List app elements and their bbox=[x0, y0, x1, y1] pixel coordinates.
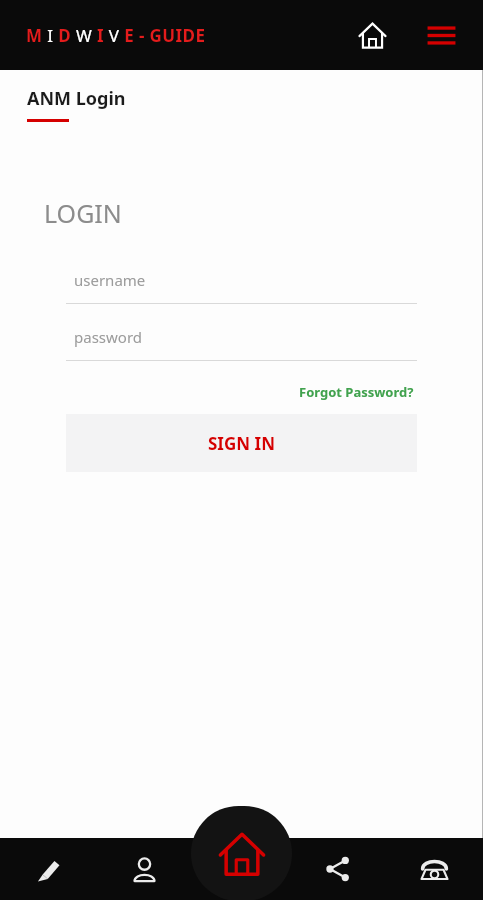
staticText: M I D W I V E - GUIDE bbox=[26, 24, 206, 47]
staticText: password bbox=[74, 327, 142, 347]
staticText: Forgot Password? bbox=[299, 383, 414, 401]
button[interactable]: Home bbox=[191, 806, 292, 900]
staticText: ANM Login bbox=[27, 86, 126, 111]
staticText: LOGIN bbox=[44, 196, 122, 230]
button[interactable]: Profile bbox=[96, 838, 192, 900]
button[interactable]: SIGN IN bbox=[66, 414, 417, 472]
button[interactable]: Menu bbox=[417, 11, 465, 59]
staticText: SIGN IN bbox=[208, 432, 275, 455]
button[interactable]: Call bbox=[386, 838, 483, 900]
button[interactable]: Share bbox=[289, 838, 386, 900]
button[interactable]: Home bbox=[348, 11, 396, 59]
button[interactable]: Edit bbox=[0, 838, 96, 900]
button[interactable]: username bbox=[66, 270, 417, 304]
button[interactable]: Forgot Password? bbox=[297, 381, 416, 403]
staticText: username bbox=[74, 270, 146, 290]
button[interactable]: password bbox=[66, 327, 417, 361]
